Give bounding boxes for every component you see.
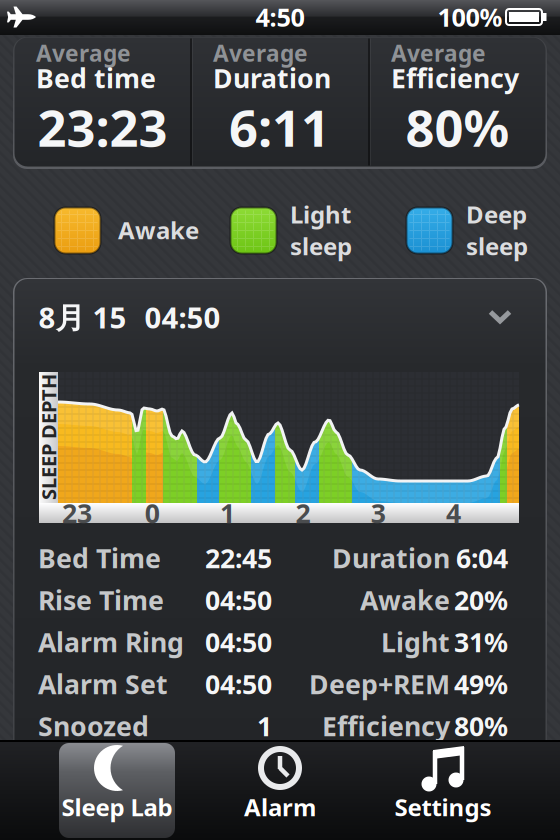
staticText: Bed time: [36, 60, 156, 96]
staticText: Deep: [466, 198, 527, 230]
staticText: 8月 15: [38, 297, 126, 336]
staticText: 80%: [405, 93, 509, 161]
staticText: Light: [290, 198, 351, 230]
staticText: sleep: [466, 230, 528, 262]
staticText: Average: [36, 38, 131, 68]
staticText: 4: [446, 495, 461, 531]
staticText: Rise Time: [38, 582, 164, 618]
staticText: Average: [391, 38, 486, 68]
staticText: Alarm Set: [38, 666, 168, 702]
staticText: 3: [371, 495, 386, 531]
staticText: 4:50: [255, 0, 304, 34]
staticText: 6:04: [456, 540, 508, 576]
staticText: 80%: [454, 708, 508, 744]
staticText: SLEEP DEPTH: [0, 424, 111, 450]
staticText: 1: [257, 708, 272, 744]
staticText: Efficiency: [391, 60, 519, 96]
staticText: Awake: [360, 582, 450, 618]
staticText: Average: [213, 38, 308, 68]
staticText: Alarm Ring: [38, 624, 184, 660]
staticText: Alarm: [244, 791, 316, 823]
staticText: 20%: [454, 582, 508, 618]
staticText: 23:23: [37, 93, 167, 161]
staticText: 100%: [437, 0, 502, 34]
staticText: sleep: [290, 230, 352, 262]
staticText: Duration: [332, 540, 450, 576]
staticText: 23: [62, 495, 92, 531]
staticText: Settings: [394, 791, 491, 823]
staticText: Light: [381, 624, 450, 660]
button[interactable]: Sleep Lab: [59, 743, 175, 838]
staticText: 49%: [454, 666, 508, 702]
staticText: Deep+REM: [309, 666, 450, 702]
button[interactable]: Alarm: [222, 743, 338, 838]
staticText: 04:50: [205, 666, 272, 702]
staticText: Bed Time: [38, 540, 161, 576]
staticText: 04:50: [144, 297, 220, 336]
staticText: 1: [220, 495, 235, 531]
staticText: 0: [145, 495, 160, 531]
staticText: 04:50: [205, 582, 272, 618]
staticText: 31%: [454, 624, 508, 660]
staticText: 04:50: [205, 624, 272, 660]
staticText: 2: [295, 495, 310, 531]
button[interactable]: 8月 15: [14, 286, 545, 348]
staticText: Duration: [213, 60, 331, 96]
staticText: 6:11: [229, 93, 330, 161]
staticText: Snoozed: [38, 708, 149, 744]
staticText: Sleep Lab: [61, 791, 172, 823]
staticText: Awake: [118, 214, 199, 246]
staticText: 22:45: [205, 540, 272, 576]
staticText: Efficiency: [322, 708, 450, 744]
button[interactable]: Settings: [385, 743, 501, 838]
